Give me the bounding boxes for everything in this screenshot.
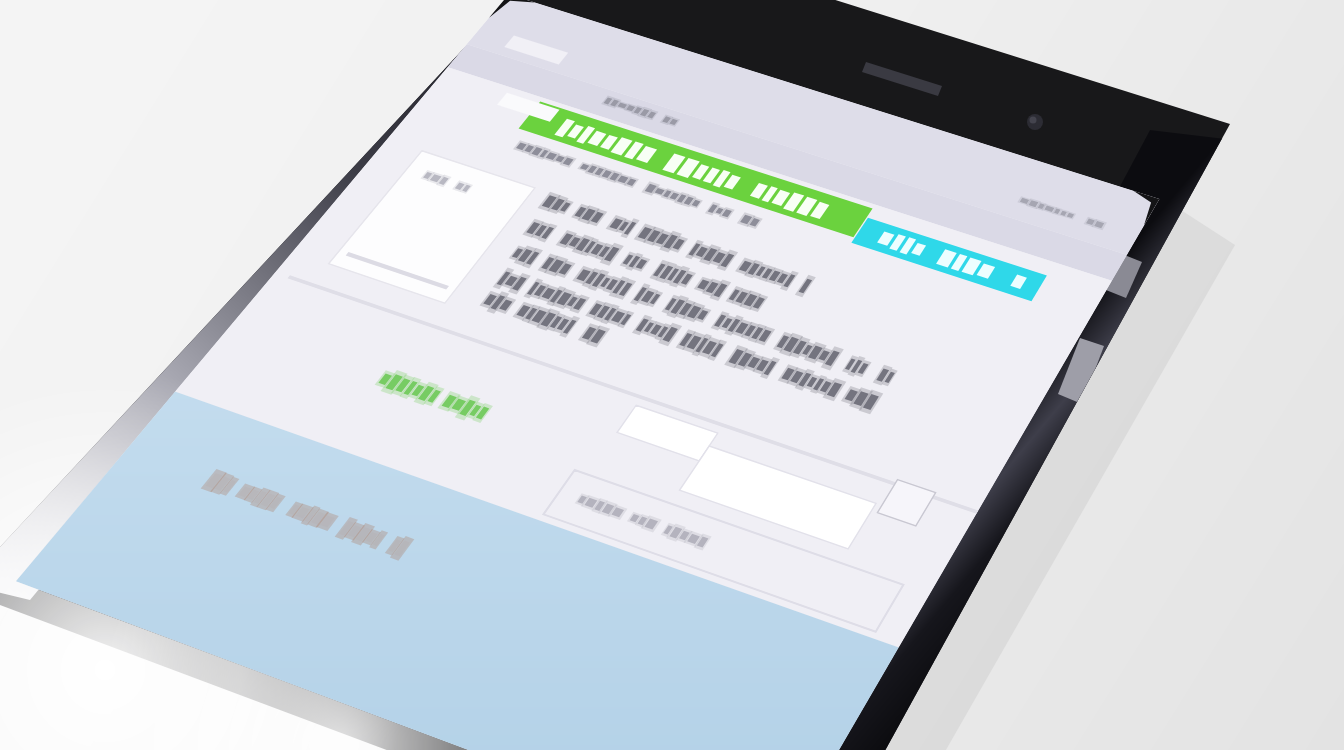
button[interactable]: Shopping list app shown on a phone <box>0 0 1344 750</box>
